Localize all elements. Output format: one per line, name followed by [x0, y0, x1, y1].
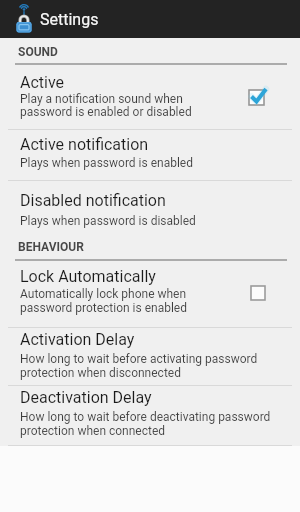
staticText: Active notification — [20, 135, 149, 154]
staticText: protection when connected — [20, 424, 166, 438]
staticText: SOUND — [18, 45, 58, 59]
staticText: password protection is enabled — [20, 301, 187, 315]
staticText: Disabled notification — [20, 191, 166, 210]
staticText: Automatically lock phone when — [20, 287, 187, 301]
button[interactable]: Disabled notification — [0, 181, 300, 233]
staticText: Deactivation Delay — [20, 388, 152, 407]
button[interactable]: Deactivation Delay — [0, 386, 300, 445]
staticText: protection when disconnected — [20, 366, 181, 380]
staticText: password is enabled or disabled — [20, 105, 192, 119]
staticText: How long to wait before activating passw… — [20, 352, 258, 366]
staticText: Lock Automatically — [20, 267, 156, 286]
button[interactable]: Activation Delay — [0, 328, 300, 385]
button[interactable] — [6, 0, 126, 38]
staticText: Active — [20, 73, 65, 92]
button[interactable]: Lock Automatically — [0, 261, 300, 328]
staticText: Plays when password is enabled — [20, 156, 193, 170]
staticText: Settings — [40, 10, 99, 29]
staticText: How long to wait before deactivating pas… — [20, 410, 271, 424]
staticText: Activation Delay — [20, 330, 135, 349]
button[interactable]: Active — [0, 65, 300, 129]
staticText: BEHAVIOUR — [18, 240, 84, 254]
button[interactable]: Active notification — [0, 130, 300, 180]
staticText: Play a notification sound when — [20, 92, 183, 106]
staticText: Plays when password is disabled — [20, 214, 196, 228]
